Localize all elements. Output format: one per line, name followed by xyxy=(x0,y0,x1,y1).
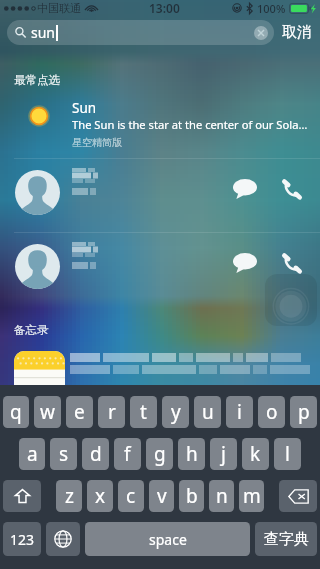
staticText: v xyxy=(157,483,167,509)
staticText: 最常点选 xyxy=(14,73,60,87)
button[interactable]: g xyxy=(146,438,173,470)
staticText: k xyxy=(250,441,261,467)
staticText: f xyxy=(124,441,131,467)
button[interactable]: Switch keyboard xyxy=(46,522,80,556)
staticText: The Sun is the star at the center of our… xyxy=(72,117,308,132)
button[interactable] xyxy=(0,351,320,396)
button[interactable]: w xyxy=(34,396,61,428)
button[interactable]: l xyxy=(274,438,301,470)
button[interactable]: Send message xyxy=(230,248,260,278)
button[interactable]: Shift xyxy=(3,480,41,512)
staticText: r xyxy=(108,399,116,425)
button[interactable]: j xyxy=(210,438,237,470)
staticText: g xyxy=(154,441,166,467)
button[interactable]: Sun xyxy=(0,92,320,158)
staticText: l xyxy=(285,441,290,467)
staticText: u xyxy=(202,399,214,425)
button[interactable]: 查字典 xyxy=(255,522,317,556)
button[interactable]: d xyxy=(82,438,109,470)
button[interactable]: Send message xyxy=(0,233,320,306)
button[interactable]: 最常点选 xyxy=(0,56,320,92)
button[interactable]: Call xyxy=(277,174,307,204)
button[interactable]: q xyxy=(3,396,29,428)
button[interactable]: sun xyxy=(7,20,274,45)
button[interactable]: r xyxy=(98,396,125,428)
button[interactable]: m xyxy=(239,480,264,512)
staticText: m xyxy=(243,483,261,509)
button[interactable]: Clear text xyxy=(254,26,268,40)
button[interactable]: x xyxy=(87,480,113,512)
staticText: Sun xyxy=(72,99,97,117)
staticText: sun xyxy=(31,23,56,42)
button[interactable]: Call xyxy=(277,248,307,278)
button[interactable]: v xyxy=(149,480,174,512)
staticText: h xyxy=(186,441,198,467)
staticText: 中国联通 xyxy=(37,1,81,15)
staticText: i xyxy=(237,399,242,425)
button[interactable]: o xyxy=(258,396,285,428)
staticText: 查字典 xyxy=(264,530,309,549)
button[interactable]: s xyxy=(50,438,77,470)
button[interactable]: z xyxy=(56,480,82,512)
button[interactable]: k xyxy=(242,438,269,470)
staticText: p xyxy=(298,399,310,425)
button[interactable]: e xyxy=(66,396,93,428)
staticText: a xyxy=(27,441,38,467)
button[interactable]: f xyxy=(114,438,141,470)
staticText: space xyxy=(149,530,187,549)
staticText: j xyxy=(221,441,226,467)
staticText: z xyxy=(65,483,74,509)
staticText: d xyxy=(90,441,102,467)
staticText: t xyxy=(140,399,147,425)
staticText: x xyxy=(95,483,106,509)
button[interactable]: 123 xyxy=(3,522,41,556)
button[interactable]: t xyxy=(130,396,157,428)
button[interactable]: h xyxy=(178,438,205,470)
button[interactable]: Send message xyxy=(230,174,260,204)
staticText: o xyxy=(266,399,278,425)
staticText: n xyxy=(216,483,228,509)
staticText: q xyxy=(10,399,22,425)
button[interactable]: Send message xyxy=(0,159,320,232)
staticText: 123 xyxy=(10,530,35,549)
staticText: b xyxy=(186,483,198,509)
button[interactable]: n xyxy=(209,480,234,512)
button[interactable]: p xyxy=(290,396,317,428)
staticText: 备忘录 xyxy=(14,323,49,337)
staticText: 星空精简版 xyxy=(72,136,122,149)
button[interactable]: a xyxy=(19,438,45,470)
staticText: 100% xyxy=(257,1,286,16)
staticText: e xyxy=(74,399,85,425)
button[interactable]: b xyxy=(179,480,204,512)
staticText: w xyxy=(40,399,55,425)
staticText: c xyxy=(126,483,136,509)
button[interactable]: Backspace xyxy=(279,480,317,512)
button[interactable]: 备忘录 xyxy=(14,323,49,337)
staticText: 取消 xyxy=(282,23,312,42)
staticText: y xyxy=(171,399,181,425)
button[interactable]: u xyxy=(194,396,221,428)
staticText: s xyxy=(59,441,69,467)
button[interactable]: c xyxy=(118,480,144,512)
staticText: 13:00 xyxy=(149,0,180,16)
button[interactable]: 取消 xyxy=(281,23,313,42)
button[interactable]: space xyxy=(85,522,250,556)
button[interactable]: y xyxy=(162,396,189,428)
button[interactable]: i xyxy=(226,396,253,428)
